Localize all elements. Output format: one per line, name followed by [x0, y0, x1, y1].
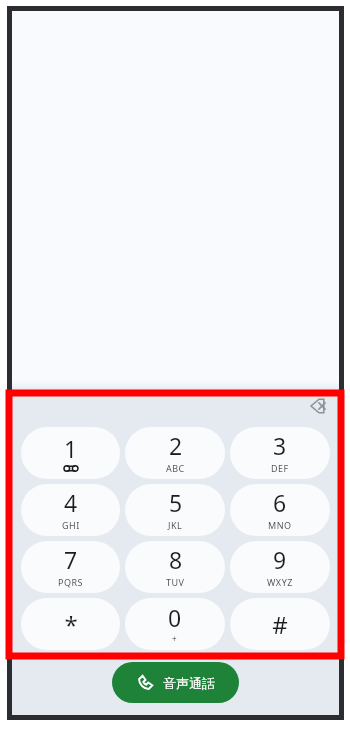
staticText: #: [272, 608, 288, 641]
staticText: 4: [64, 487, 78, 518]
staticText: 0: [168, 602, 182, 633]
button[interactable]: 音声通話: [112, 662, 239, 703]
staticText: MNO: [268, 519, 292, 531]
button[interactable]: 1: [21, 427, 120, 479]
staticText: 9: [273, 544, 287, 575]
staticText: +: [172, 633, 178, 644]
button[interactable]: 5: [125, 484, 225, 536]
staticText: 3: [273, 430, 287, 461]
button[interactable]: 0: [125, 598, 225, 650]
staticText: GHI: [62, 519, 80, 531]
staticText: 音声通話: [163, 675, 215, 691]
staticText: 8: [169, 544, 183, 575]
staticText: 7: [64, 544, 78, 575]
button[interactable]: #: [230, 598, 330, 650]
button[interactable]: *: [21, 598, 120, 650]
button[interactable]: 4: [21, 484, 120, 536]
button[interactable]: 9: [230, 541, 330, 593]
button[interactable]: 7: [21, 541, 120, 593]
staticText: TUV: [166, 576, 185, 588]
staticText: ABC: [166, 462, 185, 474]
button[interactable]: 3: [230, 427, 330, 479]
staticText: 1: [64, 433, 78, 464]
staticText: JKL: [168, 519, 183, 531]
button[interactable]: 6: [230, 484, 330, 536]
button[interactable]: Backspace: [297, 389, 331, 423]
button[interactable]: 2: [125, 427, 225, 479]
staticText: *: [64, 608, 78, 641]
staticText: DEF: [271, 462, 289, 474]
button[interactable]: 8: [125, 541, 225, 593]
staticText: 2: [169, 430, 183, 461]
staticText: 5: [169, 487, 183, 518]
staticText: PQRS: [58, 576, 84, 588]
staticText: 6: [273, 487, 287, 518]
staticText: WXYZ: [267, 576, 293, 588]
